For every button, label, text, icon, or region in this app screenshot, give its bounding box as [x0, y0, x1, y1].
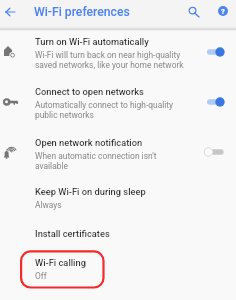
button[interactable]: Search — [180, 0, 204, 24]
button[interactable]: Toggle on — [201, 93, 230, 111]
button[interactable]: Open network notification — [0, 135, 236, 179]
staticText: Turn on Wi-Fi automatically — [35, 36, 149, 47]
staticText: ? — [221, 7, 225, 16]
staticText: saved networks, like your home network — [35, 60, 184, 70]
staticText: available — [35, 161, 68, 171]
staticText: When automatic connection isn't — [35, 151, 157, 161]
button[interactable]: Help — [211, 0, 235, 24]
staticText: Wi-Fi calling — [35, 257, 86, 268]
staticText: Open network notification — [35, 137, 143, 148]
staticText: Keep Wi-Fi on during sleep — [35, 186, 146, 197]
button[interactable]: Connect to open networks — [0, 84, 236, 128]
button[interactable]: Install certificates — [0, 224, 236, 248]
button[interactable]: Toggle off — [201, 143, 230, 161]
button[interactable]: Toggle on — [201, 43, 230, 61]
button[interactable]: Keep Wi-Fi on during sleep — [0, 184, 236, 216]
staticText: Wi-Fi preferences — [34, 5, 130, 19]
staticText: Install certificates — [35, 228, 110, 239]
button[interactable]: Back — [0, 0, 24, 24]
staticText: public networks — [35, 110, 94, 120]
staticText: Off — [35, 271, 47, 281]
staticText: Automatically connect to high-quality — [35, 100, 174, 110]
staticText: Connect to open networks — [35, 86, 144, 97]
staticText: Always — [35, 200, 62, 210]
button[interactable]: Wi-Fi calling — [0, 253, 236, 283]
staticText: Wi-Fi will turn back on near high-qualit… — [35, 50, 181, 60]
button[interactable]: Turn on Wi-Fi automatically — [0, 35, 236, 79]
